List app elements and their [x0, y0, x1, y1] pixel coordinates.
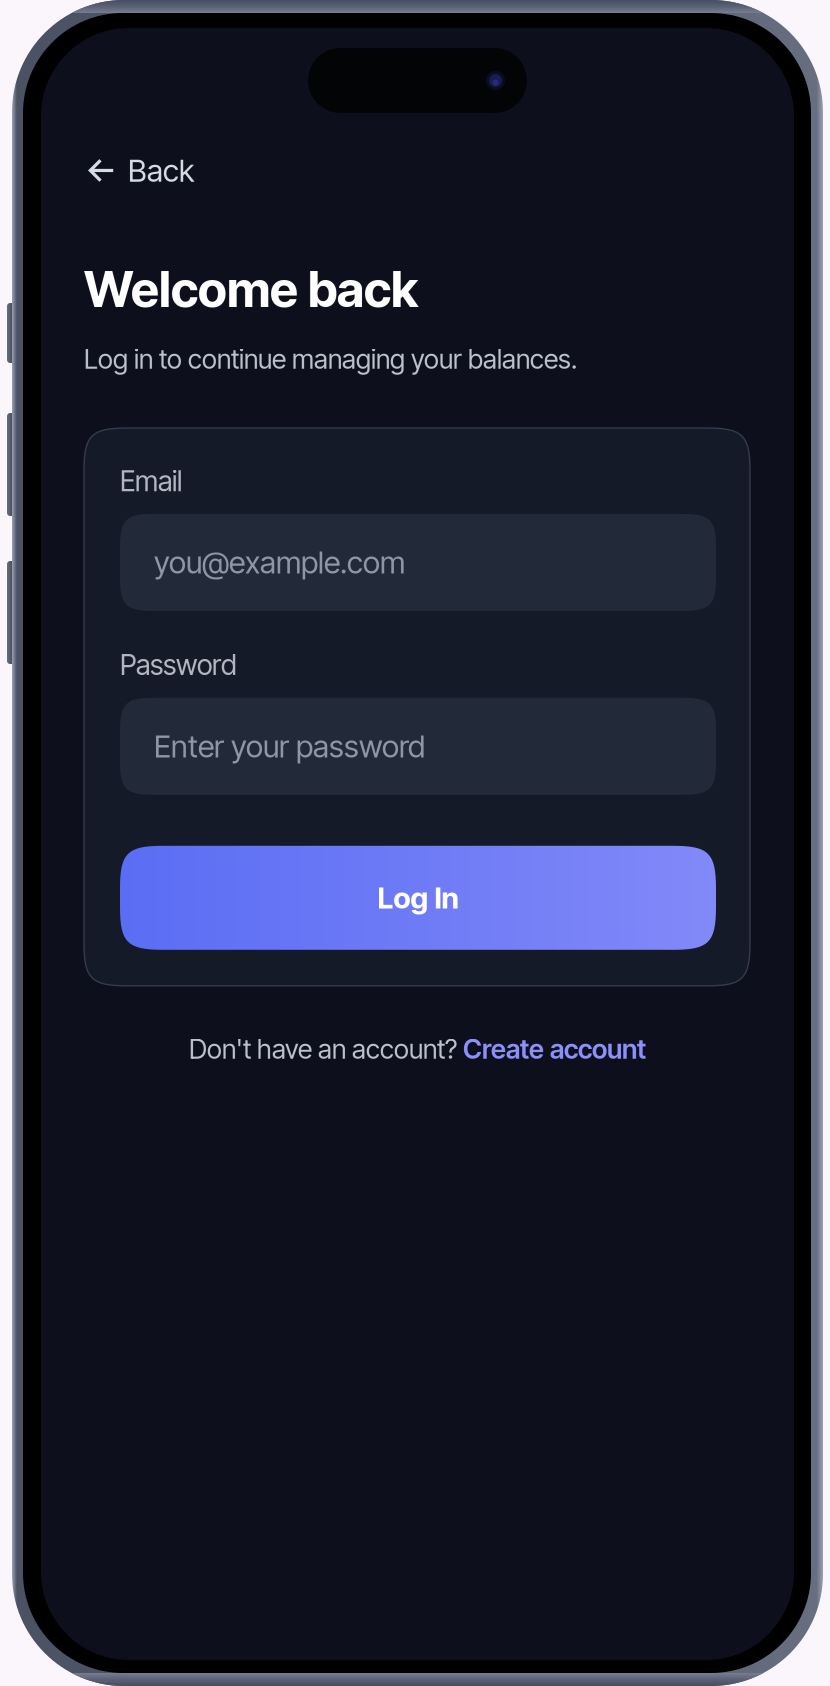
button[interactable]: Create account [463, 1033, 646, 1065]
staticText: Log in to continue managing your balance… [84, 343, 577, 375]
button[interactable]: Enter your password [120, 698, 716, 795]
staticText: Don't have an account? [189, 1033, 463, 1065]
staticText: Password [120, 648, 237, 682]
button[interactable]: you@example.com [120, 514, 716, 611]
staticText: you@example.com [154, 544, 405, 581]
staticText: Log In [377, 880, 458, 916]
staticText: Back [128, 152, 194, 189]
staticText: Create account [463, 1033, 646, 1065]
button[interactable]: Log In [120, 846, 716, 950]
staticText: Email [120, 464, 182, 498]
staticText: Welcome back [84, 259, 418, 319]
button[interactable]: Back [41, 144, 214, 197]
staticText: Enter your password [154, 728, 425, 765]
